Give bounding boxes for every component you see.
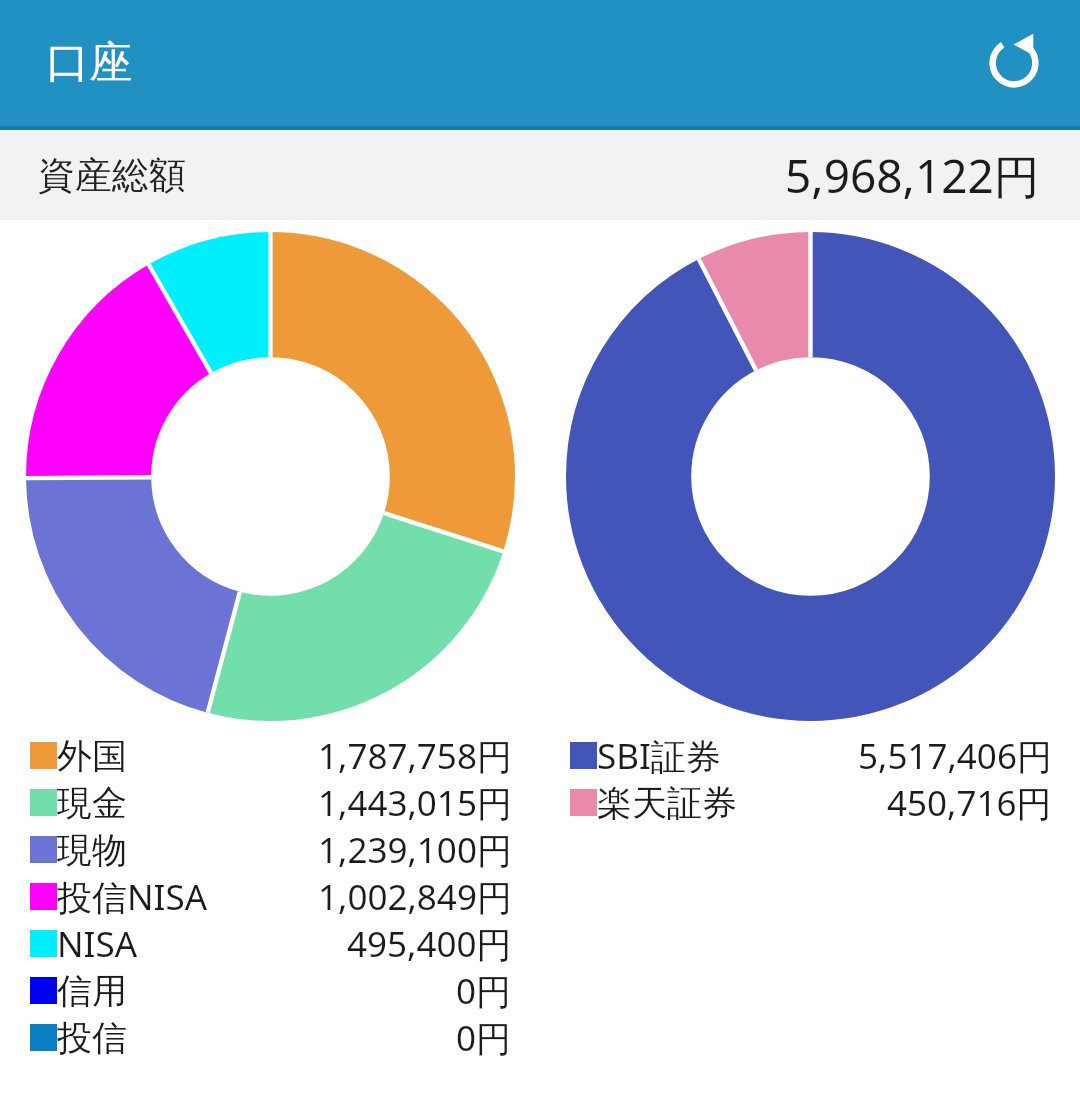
button[interactable]: 投信 bbox=[0, 1014, 540, 1061]
button[interactable]: 外国 bbox=[0, 732, 540, 779]
staticText: 0円 bbox=[456, 1014, 512, 1061]
staticText: 1,787,758円 bbox=[318, 732, 512, 779]
staticText: 外国 bbox=[57, 734, 127, 778]
staticText: 1,239,100円 bbox=[318, 826, 512, 873]
staticText: 投信 bbox=[57, 1016, 127, 1060]
button[interactable]: 信用 bbox=[0, 967, 540, 1014]
staticText: 1,443,015円 bbox=[318, 779, 512, 826]
staticText: 1,002,849円 bbox=[318, 873, 512, 920]
staticText: 5,517,406円 bbox=[858, 732, 1052, 779]
staticText: 495,400円 bbox=[347, 920, 512, 967]
staticText: 現物 bbox=[57, 828, 127, 872]
staticText: 0円 bbox=[456, 967, 512, 1014]
staticText: 現金 bbox=[57, 781, 127, 825]
staticText: 450,716円 bbox=[887, 779, 1052, 826]
button[interactable]: 現金 bbox=[0, 779, 540, 826]
button[interactable]: NISA bbox=[0, 920, 540, 967]
staticText: 資産総額 bbox=[38, 152, 186, 199]
button[interactable]: 資産総額 bbox=[0, 130, 1080, 220]
button[interactable]: SBI証券 bbox=[540, 732, 1080, 779]
staticText: 楽天証券 bbox=[597, 781, 737, 825]
button[interactable]: Refresh bbox=[974, 23, 1054, 103]
staticText: 信用 bbox=[57, 969, 127, 1013]
staticText: SBI証券 bbox=[597, 732, 721, 779]
button[interactable]: 現物 bbox=[0, 826, 540, 873]
button[interactable]: 楽天証券 bbox=[540, 779, 1080, 826]
staticText: NISA bbox=[57, 920, 138, 967]
staticText: 投信NISA bbox=[57, 873, 208, 920]
staticText: 5,968,122円 bbox=[785, 144, 1040, 207]
staticText: 口座 bbox=[46, 36, 132, 90]
button[interactable]: 投信NISA bbox=[0, 873, 540, 920]
